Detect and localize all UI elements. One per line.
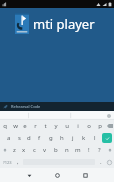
button[interactable]: b [50, 144, 61, 156]
staticText: w [13, 122, 18, 130]
staticText: Rehearsal Code [11, 104, 41, 109]
staticText: ?123 [3, 160, 12, 165]
button[interactable]: t [40, 120, 50, 132]
button[interactable]: . [97, 156, 104, 168]
staticText: j [72, 134, 74, 142]
staticText: c [33, 146, 36, 154]
button[interactable]: Recent apps [78, 168, 92, 182]
button[interactable]: Home [50, 168, 64, 182]
button[interactable]: Shift [0, 144, 9, 156]
staticText: ? [98, 146, 101, 154]
staticText: k [82, 134, 86, 142]
button[interactable]: p [94, 120, 105, 132]
staticText: n [65, 146, 69, 154]
staticText: z [13, 146, 16, 154]
button[interactable]: s [14, 132, 24, 144]
button[interactable]: Keyboard settings [107, 114, 111, 118]
button[interactable]: u [61, 120, 72, 132]
button[interactable]: o [83, 120, 94, 132]
button[interactable]: ! [83, 144, 94, 156]
button[interactable]: Rehearsal code info [3, 102, 114, 111]
button[interactable]: x [19, 144, 29, 156]
staticText: . [100, 158, 102, 166]
button[interactable]: y [50, 120, 61, 132]
staticText: e [23, 122, 27, 130]
button[interactable]: e [20, 120, 30, 132]
other: Rehearsal code info [3, 104, 8, 109]
button[interactable]: Back [22, 168, 36, 182]
button[interactable]: g [45, 132, 56, 144]
button[interactable]: m [72, 144, 83, 156]
staticText: mti player [33, 15, 95, 33]
button[interactable]: ?123 [0, 156, 14, 168]
staticText: y [54, 122, 58, 130]
button[interactable]: c [29, 144, 39, 156]
staticText: r [34, 122, 37, 130]
button[interactable]: r [30, 120, 40, 132]
staticText: s [18, 134, 21, 142]
staticText: u [65, 122, 69, 130]
staticText: i [77, 122, 79, 130]
staticText: p [98, 122, 102, 130]
button[interactable]: ? [94, 144, 105, 156]
staticText: q [3, 122, 7, 130]
staticText: v [43, 146, 47, 154]
staticText: ! [88, 146, 90, 154]
staticText: o [87, 122, 91, 130]
button[interactable]: d [24, 132, 34, 144]
staticText: d [27, 134, 31, 142]
staticText: a [7, 134, 11, 142]
button[interactable]: Shift [105, 144, 114, 156]
button[interactable]: v [39, 144, 50, 156]
staticText: b [54, 146, 58, 154]
staticText: , [17, 158, 19, 166]
button[interactable]: k [78, 132, 89, 144]
staticText: h [60, 134, 64, 142]
staticText: g [49, 134, 53, 142]
button[interactable]: j [67, 132, 78, 144]
staticText: l [94, 134, 96, 142]
button[interactable]: Backspace [105, 120, 114, 132]
button[interactable]: a [4, 132, 14, 144]
button[interactable]: w [10, 120, 20, 132]
button[interactable]: Enter [102, 133, 112, 143]
button[interactable]: q [0, 120, 10, 132]
button[interactable]: f [34, 132, 45, 144]
staticText: x [22, 146, 26, 154]
button[interactable]: Emoji [104, 156, 114, 168]
button[interactable]: , [14, 156, 21, 168]
button[interactable]: z [9, 144, 19, 156]
staticText: t [44, 122, 47, 130]
button[interactable]: i [72, 120, 83, 132]
button[interactable]: h [56, 132, 67, 144]
button[interactable]: n [61, 144, 72, 156]
staticText: m [75, 146, 81, 154]
staticText: f [38, 134, 41, 142]
button[interactable]: l [89, 132, 100, 144]
